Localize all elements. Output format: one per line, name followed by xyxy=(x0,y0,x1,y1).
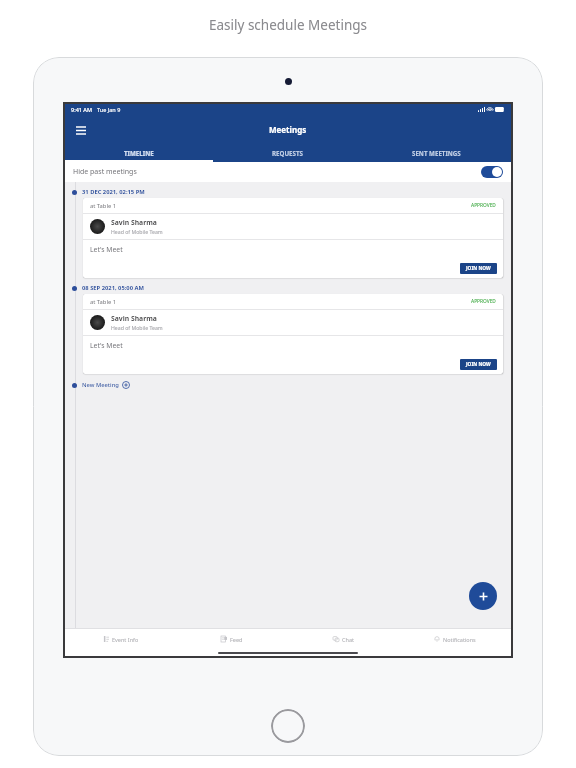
staticText: Tue Jan 9 xyxy=(97,106,121,113)
staticText: Head of Mobile Team xyxy=(111,324,163,331)
button[interactable]: Notifications xyxy=(399,629,511,649)
button[interactable]: at Table 1 xyxy=(83,294,503,374)
staticText: 9:41 AM xyxy=(71,106,93,113)
staticText: 31 DEC 2021, 02:15 PM xyxy=(82,188,145,196)
staticText: REQUESTS xyxy=(272,149,303,157)
button[interactable]: JOIN NOW xyxy=(460,263,497,274)
button[interactable]: TIMELINE xyxy=(65,144,213,162)
button[interactable]: REQUESTS xyxy=(213,144,362,162)
staticText: Chat xyxy=(342,636,354,643)
staticText: APPROVED xyxy=(471,202,496,209)
staticText: Hide past meetings xyxy=(73,167,137,177)
other: Hide past meetings toggle xyxy=(481,166,503,178)
staticText: Head of Mobile Team xyxy=(111,228,163,235)
staticText: Let's Meet xyxy=(90,245,123,254)
staticText: Let's Meet xyxy=(90,341,123,350)
button[interactable]: JOIN NOW xyxy=(460,359,497,370)
button[interactable]: SENT MEETINGS xyxy=(362,144,511,162)
staticText: New Meeting xyxy=(82,381,119,389)
button[interactable]: Menu xyxy=(73,122,89,138)
staticText: Meetings xyxy=(269,124,307,135)
button[interactable]: New Meeting xyxy=(65,378,511,392)
staticText: JOIN NOW xyxy=(466,361,491,368)
staticText: Savin Sharma xyxy=(111,314,157,323)
button[interactable]: at Table 1 xyxy=(83,198,503,278)
button[interactable]: New meeting xyxy=(469,582,497,610)
button[interactable]: Chat xyxy=(287,629,399,649)
staticText: APPROVED xyxy=(471,298,496,305)
staticText: at Table 1 xyxy=(90,202,117,210)
staticText: Event Info xyxy=(112,636,139,643)
button[interactable]: Event Info xyxy=(65,629,176,649)
staticText: TIMELINE xyxy=(124,149,154,157)
staticText: Savin Sharma xyxy=(111,218,157,227)
button[interactable]: Feed xyxy=(176,629,287,649)
staticText: 08 SEP 2021, 05:00 AM xyxy=(82,284,144,292)
staticText: at Table 1 xyxy=(90,298,117,306)
other: Add meeting xyxy=(122,381,130,389)
staticText: JOIN NOW xyxy=(466,265,491,272)
staticText: SENT MEETINGS xyxy=(412,149,461,157)
staticText: Notifications xyxy=(443,636,476,643)
staticText: Feed xyxy=(230,636,243,643)
staticText: Easily schedule Meetings xyxy=(209,16,368,34)
button[interactable]: Hide past meetings xyxy=(65,162,511,182)
